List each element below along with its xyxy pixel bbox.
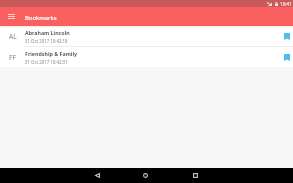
button[interactable]: AL bbox=[0, 26, 293, 47]
staticText: 31 Oct 2017 10:42:18 bbox=[25, 38, 68, 44]
button[interactable]: Recent apps bbox=[185, 168, 206, 183]
staticText: FF bbox=[9, 53, 16, 62]
button[interactable]: FF bbox=[0, 47, 293, 68]
staticText: Abraham Lincoln bbox=[25, 29, 70, 36]
staticText: AL bbox=[9, 32, 17, 41]
staticText: 10:41 bbox=[280, 1, 292, 7]
staticText: 31 Oct 2017 10:42:31 bbox=[25, 59, 68, 65]
staticText: Friendship & Family bbox=[25, 50, 78, 57]
button[interactable]: Open navigation menu bbox=[0, 7, 22, 26]
button[interactable]: Back bbox=[87, 168, 108, 183]
button[interactable]: Home bbox=[135, 168, 156, 183]
staticText: Bookmarks bbox=[25, 14, 57, 22]
